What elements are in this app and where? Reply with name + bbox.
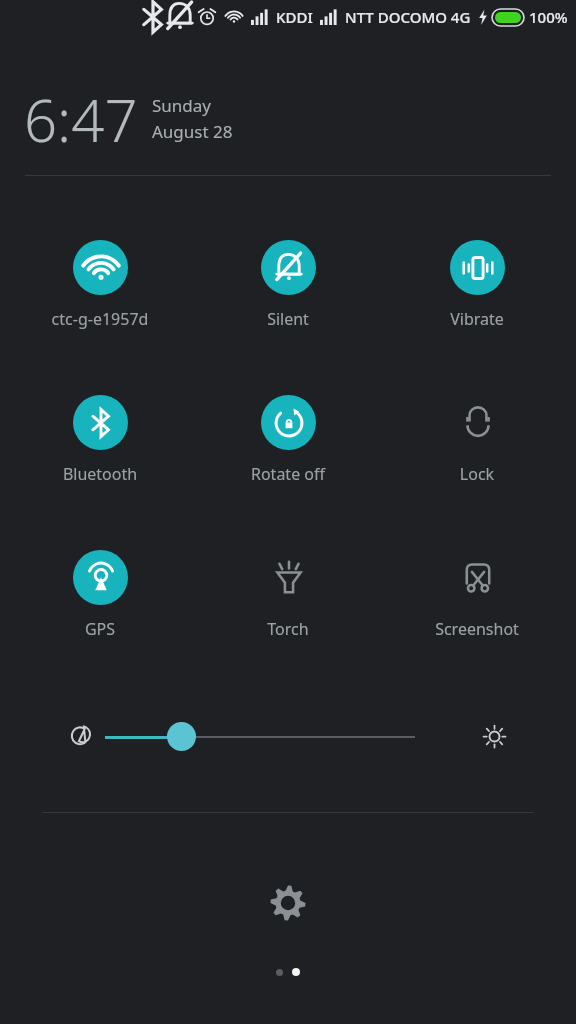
staticText: KDDI: [276, 7, 313, 27]
staticText: August 28: [152, 120, 233, 143]
staticText: 6:47: [24, 80, 138, 159]
staticText: Rotate off: [208, 463, 368, 485]
button[interactable]: Rotate off: [208, 395, 368, 485]
staticText: 100%: [529, 7, 568, 27]
button[interactable]: GPS: [20, 550, 180, 640]
button[interactable]: Lock: [397, 395, 557, 485]
staticText: Lock: [397, 463, 557, 485]
staticText: Silent: [208, 308, 368, 330]
staticText: Screenshot: [397, 618, 557, 640]
button[interactable]: Torch: [208, 550, 368, 640]
staticText: NTT DOCOMO 4G: [345, 7, 471, 27]
staticText: Sunday: [152, 94, 212, 117]
staticText: Torch: [208, 618, 368, 640]
button[interactable]: Brightness: [167, 722, 196, 751]
staticText: GPS: [20, 618, 180, 640]
button[interactable]: Screenshot: [397, 550, 557, 640]
button[interactable]: Bluetooth: [20, 395, 180, 485]
other: High brightness: [482, 724, 507, 749]
staticText: ctc-g-e1957d: [20, 308, 180, 330]
button[interactable]: Silent: [208, 240, 368, 330]
button[interactable]: Vibrate: [397, 240, 557, 330]
staticText: Vibrate: [397, 308, 557, 330]
button[interactable]: Settings: [258, 873, 318, 933]
other: Low brightness: [68, 725, 92, 749]
button[interactable]: ctc-g-e1957d: [20, 240, 180, 330]
button[interactable]: Low brightness: [0, 712, 576, 762]
staticText: Bluetooth: [20, 463, 180, 485]
